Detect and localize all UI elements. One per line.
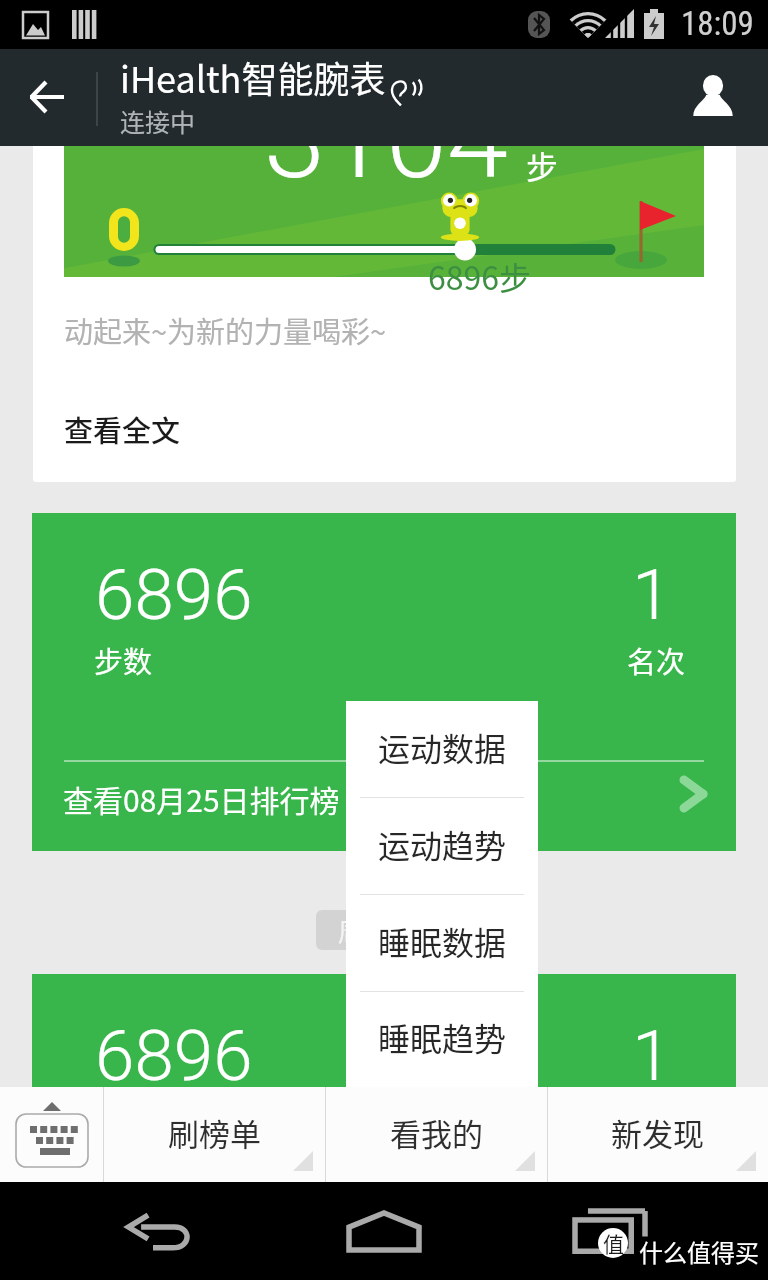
staticText: 周数据 bbox=[338, 912, 414, 948]
staticText: 运动数据 bbox=[378, 724, 507, 770]
button[interactable]: 睡眠数据 bbox=[346, 895, 538, 992]
button[interactable]: 6896 bbox=[32, 513, 736, 851]
button[interactable]: Back bbox=[0, 49, 96, 146]
button[interactable]: Home bbox=[328, 1188, 440, 1274]
button[interactable]: 3104 bbox=[33, 104, 736, 482]
staticText: 18:09 bbox=[681, 4, 754, 43]
staticText: 查看全文 bbox=[64, 408, 181, 450]
button[interactable]: Back bbox=[104, 1188, 216, 1274]
staticText: 睡眠数据 bbox=[378, 918, 507, 964]
staticText: 6896步 bbox=[428, 253, 532, 299]
button[interactable]: 周数据 bbox=[316, 910, 436, 950]
staticText: 1 bbox=[632, 1014, 672, 1097]
staticText: 3104 bbox=[264, 104, 509, 204]
button[interactable]: 看我的 bbox=[325, 1087, 547, 1182]
staticText: 名次 bbox=[627, 1100, 686, 1142]
button[interactable]: Account bbox=[671, 49, 755, 146]
button[interactable]: Keyboard bbox=[0, 1087, 103, 1182]
button[interactable]: 运动数据 bbox=[346, 701, 538, 798]
button[interactable]: Recents bbox=[560, 1188, 660, 1274]
staticText: 睡眠趋势 bbox=[378, 1014, 507, 1060]
staticText: 什么值得买 bbox=[639, 1234, 759, 1269]
staticText: 6896 bbox=[95, 553, 253, 636]
staticText: 步 bbox=[526, 142, 559, 188]
button[interactable]: 6896 bbox=[32, 974, 736, 1280]
staticText: 1 bbox=[632, 553, 672, 636]
staticText: 查看08月25日排行榜 bbox=[63, 1238, 340, 1280]
staticText: iHealth智能腕表 bbox=[120, 51, 386, 103]
button[interactable]: 新发现 bbox=[547, 1087, 768, 1182]
staticText: 动起来~为新的力量喝彩~ bbox=[64, 309, 387, 351]
staticText: 步数 bbox=[94, 639, 153, 681]
staticText: 步数 bbox=[94, 1100, 153, 1142]
staticText: 刷榜单 bbox=[168, 1110, 261, 1155]
button[interactable]: 运动趋势 bbox=[346, 798, 538, 895]
staticText: 查看08月25日排行榜 bbox=[63, 777, 340, 820]
staticText: 看我的 bbox=[390, 1110, 483, 1155]
staticText: 连接中 bbox=[120, 103, 196, 139]
staticText: 运动趋势 bbox=[378, 821, 507, 867]
staticText: 值 bbox=[603, 1228, 624, 1258]
button[interactable]: 刷榜单 bbox=[103, 1087, 325, 1182]
staticText: 新发现 bbox=[611, 1110, 704, 1155]
button[interactable]: 睡眠趋势 bbox=[346, 992, 538, 1087]
staticText: 名次 bbox=[627, 639, 686, 681]
staticText: 6896 bbox=[95, 1014, 253, 1097]
